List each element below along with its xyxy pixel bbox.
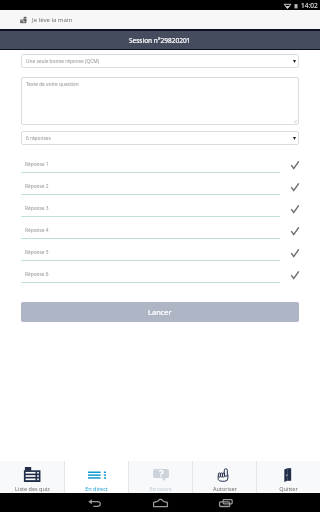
button[interactable]: Home: [127, 493, 193, 512]
button[interactable]: Valider réponse 5: [279, 246, 299, 264]
staticText: Réponse 3: [25, 205, 49, 212]
button[interactable]: En direct: [65, 461, 128, 493]
button[interactable]: Je lève la main: [20, 16, 73, 24]
staticText: Liste des quiz: [15, 485, 50, 492]
staticText: En direct: [85, 485, 108, 492]
staticText: 14:02: [301, 1, 318, 10]
staticText: Réponse 2: [25, 183, 49, 190]
staticText: Réponse 6: [25, 271, 49, 278]
button[interactable]: Quitter: [257, 461, 320, 493]
staticText: 6 réponses: [26, 135, 51, 142]
button[interactable]: Valider réponse 1: [279, 158, 299, 176]
staticText: Autoriser: [213, 485, 237, 492]
staticText: En cours: [149, 485, 172, 492]
button[interactable]: Back: [62, 493, 127, 512]
staticText: Réponse 1: [25, 161, 49, 168]
button[interactable]: Réponse 1: [21, 158, 280, 173]
button[interactable]: Autoriser: [193, 461, 256, 493]
staticText: Session n°29820201: [129, 36, 191, 45]
button[interactable]: Valider réponse 6: [279, 268, 299, 286]
button[interactable]: Réponse 5: [21, 246, 280, 261]
button[interactable]: Liste des quiz: [0, 461, 64, 493]
staticText: Quitter: [279, 485, 298, 492]
staticText: Réponse 4: [25, 227, 49, 234]
button[interactable]: Texte de votre question: [21, 77, 299, 125]
staticText: Lancer: [148, 307, 172, 317]
button[interactable]: Une seule bonne réponse (QCM): [21, 54, 299, 68]
button[interactable]: En cours: [129, 461, 192, 493]
button[interactable]: Valider réponse 3: [279, 202, 299, 220]
staticText: Texte de votre question: [26, 81, 79, 88]
button[interactable]: Réponse 3: [21, 202, 280, 217]
button[interactable]: Valider réponse 2: [279, 180, 299, 198]
button[interactable]: Recent apps: [193, 493, 258, 512]
button[interactable]: Valider réponse 4: [279, 224, 299, 242]
staticText: Réponse 5: [25, 249, 49, 256]
staticText: Je lève la main: [32, 16, 73, 24]
staticText: Une seule bonne réponse (QCM): [26, 58, 99, 65]
button[interactable]: 6 réponses: [21, 131, 299, 145]
button[interactable]: Réponse 4: [21, 224, 280, 239]
button[interactable]: Réponse 2: [21, 180, 280, 195]
button[interactable]: Réponse 6: [21, 268, 280, 283]
button[interactable]: Lancer: [21, 302, 299, 322]
